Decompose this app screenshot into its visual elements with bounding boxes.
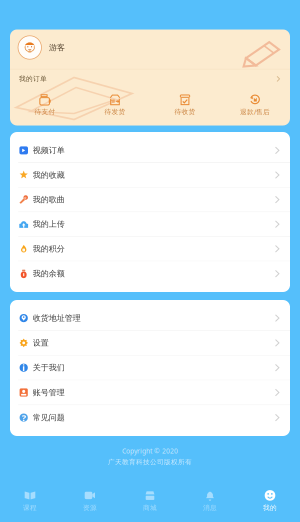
button[interactable]: 我的 xyxy=(240,490,300,512)
button[interactable]: 商城 xyxy=(120,490,180,512)
button[interactable]: 待发货 xyxy=(80,94,150,116)
button[interactable]: 资源 xyxy=(60,490,120,512)
staticText: 我的订单 xyxy=(19,75,47,83)
staticText: 关于我们 xyxy=(33,363,65,373)
button[interactable]: 视频订单 xyxy=(10,138,290,163)
staticText: 商城 xyxy=(143,504,157,512)
staticText: 消息 xyxy=(203,504,217,512)
button[interactable]: 我的上传 xyxy=(10,212,290,237)
staticText: ? xyxy=(22,411,26,424)
staticText: 课程 xyxy=(23,504,37,512)
button[interactable]: 设置 xyxy=(10,331,290,356)
staticText: 广天教育科技公司版权所有 xyxy=(108,458,192,466)
staticText: 我的余额 xyxy=(33,269,65,279)
button[interactable]: 待收货 xyxy=(150,94,220,116)
staticText: 我的上传 xyxy=(33,219,65,229)
staticText: 待收货 xyxy=(174,108,195,116)
button[interactable]: 收货地址管理 xyxy=(10,306,290,331)
button[interactable]: 我的余额 xyxy=(10,261,290,286)
staticText: 视频订单 xyxy=(33,145,65,155)
staticText: 待发货 xyxy=(104,108,125,116)
button[interactable]: 账号管理 xyxy=(10,380,290,405)
staticText: 常见问题 xyxy=(33,413,65,422)
staticText: 退款/售后 xyxy=(240,107,270,116)
staticText: 我的积分 xyxy=(33,244,65,254)
button[interactable]: 我的积分 xyxy=(10,237,290,261)
staticText: Copyright © 2020 xyxy=(122,446,178,455)
button[interactable]: ? xyxy=(10,405,290,430)
button[interactable]: 课程 xyxy=(0,490,60,512)
button[interactable]: 我的收藏 xyxy=(10,163,290,188)
staticText: 待支付 xyxy=(34,108,55,116)
button[interactable]: 消息 xyxy=(180,490,240,512)
staticText: 我的收藏 xyxy=(33,170,65,180)
button[interactable]: 退款/售后 xyxy=(220,94,290,116)
button[interactable]: 我的歌曲 xyxy=(10,188,290,212)
button[interactable]: 我的订单 xyxy=(10,73,290,84)
staticText: i xyxy=(22,361,25,374)
button[interactable]: 待支付 xyxy=(10,94,80,116)
staticText: 设置 xyxy=(33,338,49,348)
staticText: 我的歌曲 xyxy=(33,195,65,204)
staticText: 收货地址管理 xyxy=(33,313,81,323)
staticText: 我的 xyxy=(263,504,277,512)
staticText: 账号管理 xyxy=(33,388,65,397)
staticText: 资源 xyxy=(83,504,97,512)
button[interactable]: i xyxy=(10,356,290,380)
button[interactable]: 游客 xyxy=(10,29,290,65)
staticText: 游客 xyxy=(49,43,65,52)
